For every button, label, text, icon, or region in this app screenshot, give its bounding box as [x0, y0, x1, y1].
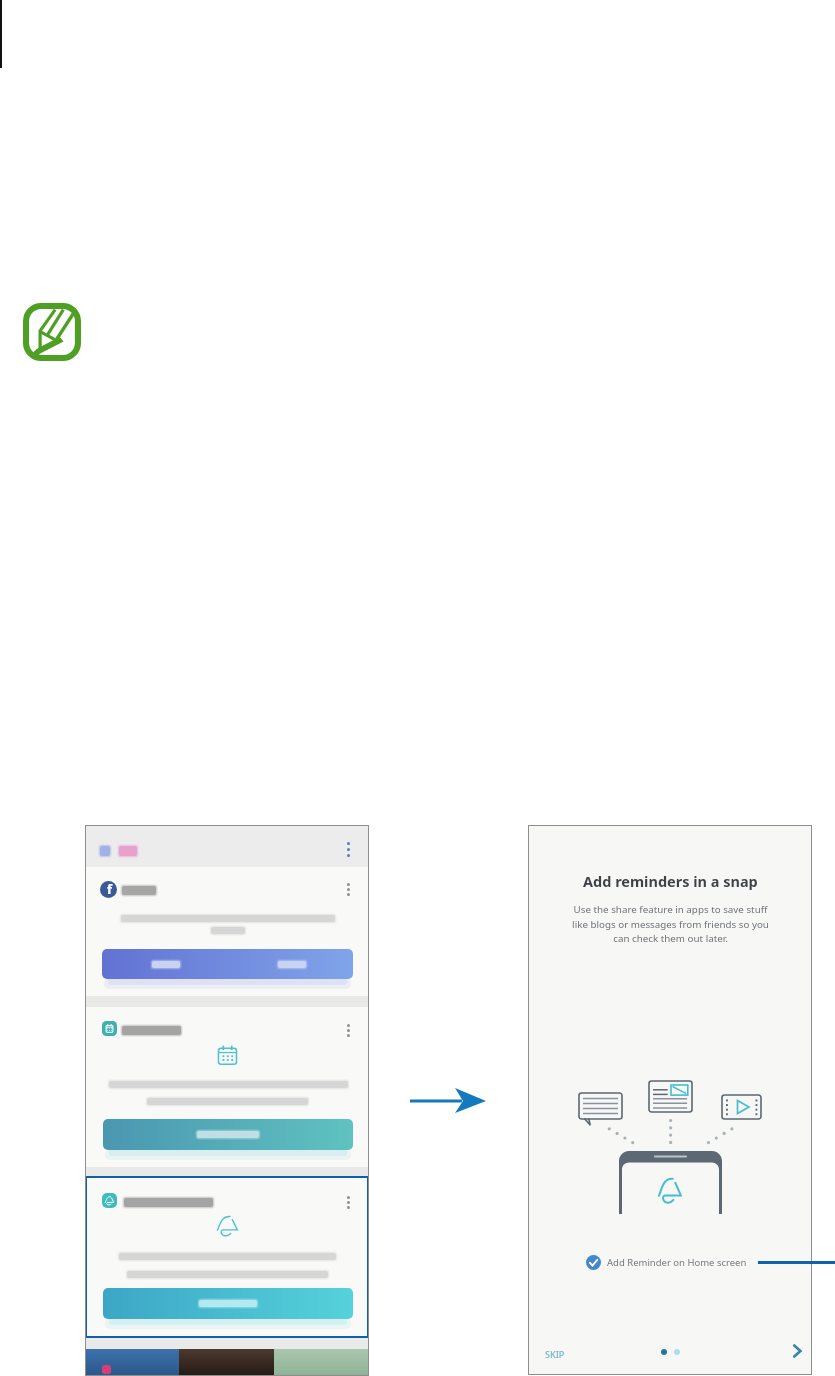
button[interactable]: Create event	[103, 1119, 353, 1150]
button[interactable]: More options	[342, 1019, 355, 1042]
staticText: Add Reminder on Home screen	[607, 1256, 747, 1269]
staticText: Use the share feature in apps to save st…	[572, 903, 769, 945]
button[interactable]: More options	[342, 1191, 355, 1214]
button[interactable]: More options	[342, 878, 355, 901]
button[interactable]: Get started	[103, 1288, 353, 1319]
staticText: SKIP	[545, 1348, 565, 1360]
button[interactable]: SKIP	[537, 1343, 573, 1365]
staticText: Add reminders in a snap	[583, 871, 758, 891]
button[interactable]: Later / Update	[102, 949, 353, 979]
staticText: f	[107, 880, 113, 897]
button[interactable]: Add Reminder on Home screen	[586, 1250, 766, 1274]
button[interactable]: Next	[785, 1340, 807, 1362]
button[interactable]: More options	[347, 842, 350, 857]
